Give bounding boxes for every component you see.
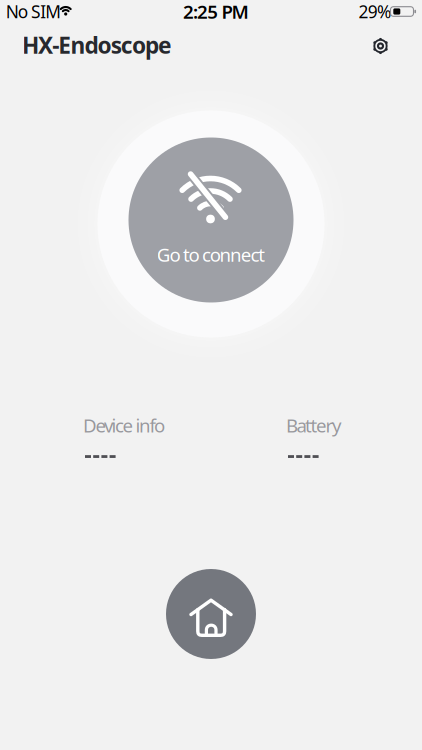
staticText: No SIM — [6, 0, 61, 23]
staticText: 29% — [358, 0, 391, 23]
button[interactable]: Home — [166, 569, 256, 659]
button[interactable]: Settings — [358, 24, 402, 68]
staticText: Battery — [286, 413, 342, 438]
staticText: Device info — [83, 413, 165, 438]
staticText: 2:25 PM — [183, 0, 248, 24]
staticText: HX-Endoscope — [22, 30, 172, 60]
button[interactable]: Go to connect — [128, 137, 294, 303]
staticText: Go to connect — [157, 242, 265, 267]
